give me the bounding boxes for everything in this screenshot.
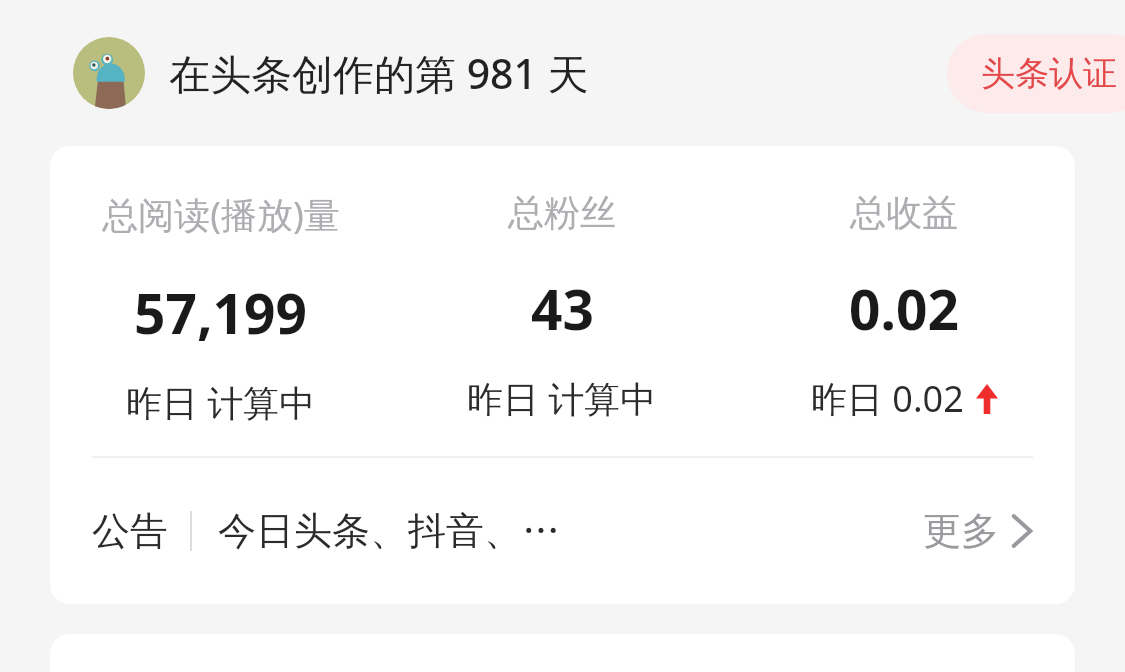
staticText: 43 (531, 271, 594, 346)
staticText: 更多 (923, 507, 999, 555)
staticText: 公告 (92, 507, 168, 555)
other: More (1011, 514, 1033, 548)
staticText: 总收益 (850, 190, 958, 235)
staticText: 头条认证 (981, 52, 1117, 95)
button[interactable]: Profile avatar (73, 37, 145, 109)
button[interactable]: 总收益 (733, 146, 1075, 456)
staticText: 今日头条、抖音、西瓜视频紧… (218, 507, 570, 555)
button[interactable]: 总粉丝 (391, 146, 733, 456)
button[interactable]: 总阅读(播放)量 (50, 146, 391, 456)
staticText: 昨日 0.02 (811, 374, 964, 423)
staticText: 0.02 (849, 271, 959, 346)
staticText: 昨日 计算中 (126, 378, 316, 427)
staticText: 总粉丝 (508, 190, 616, 235)
staticText: 昨日 计算中 (467, 374, 657, 423)
staticText: 57,199 (134, 275, 307, 350)
button[interactable]: 公告 (50, 458, 1075, 604)
staticText: 总阅读(播放)量 (102, 190, 340, 239)
staticText: 在头条创作的第 981 天 (169, 45, 589, 101)
button[interactable]: 头条认证 (947, 34, 1125, 113)
